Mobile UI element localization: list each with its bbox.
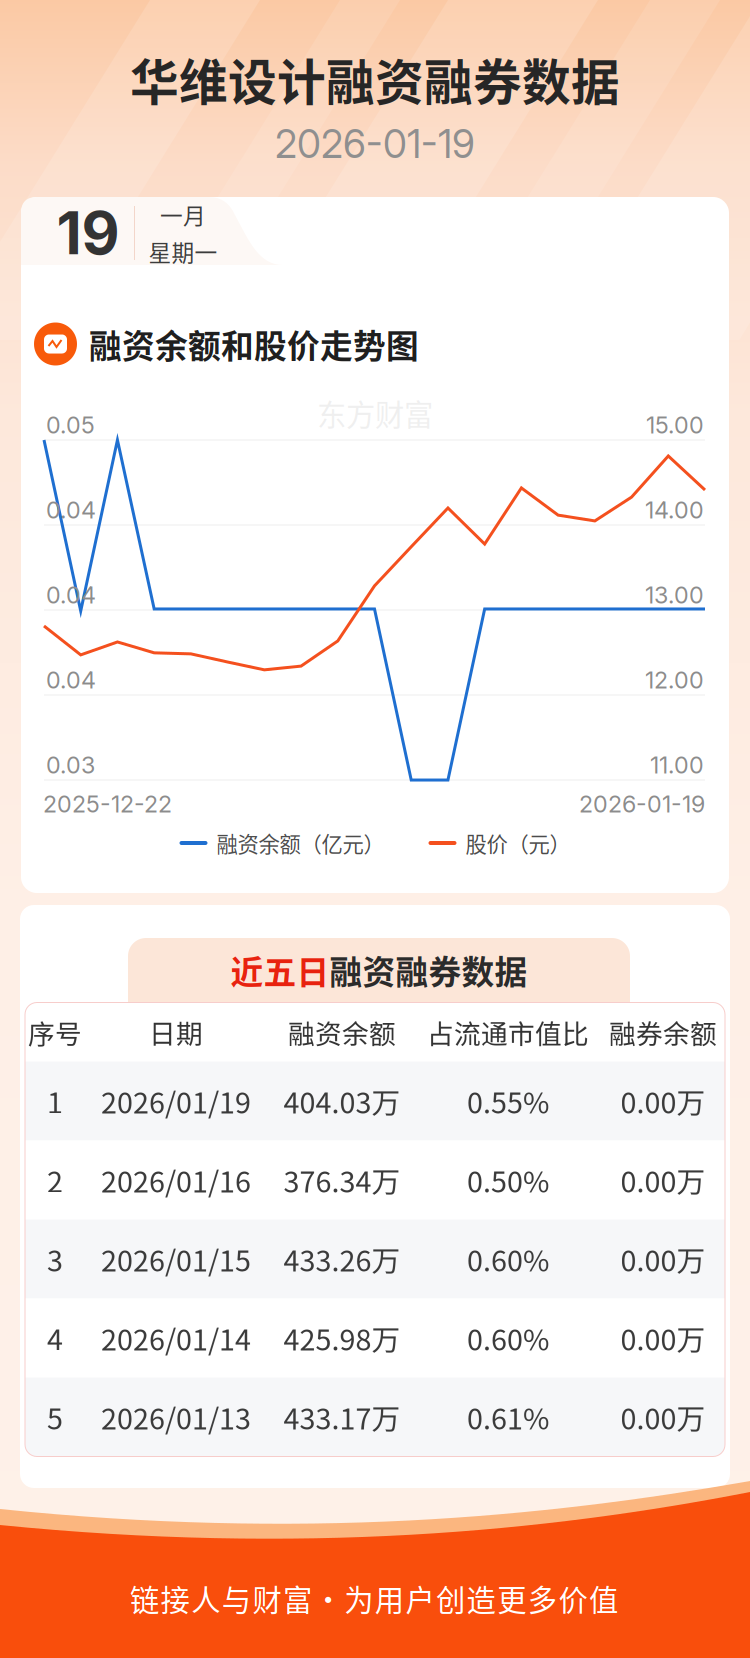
staticText: 近五日 xyxy=(230,946,329,994)
staticText: 融券余额 xyxy=(609,1013,717,1051)
staticText: 433.17万 xyxy=(283,1396,400,1438)
staticText: 融资余额和股价走势图 xyxy=(89,320,419,368)
staticText: 404.03万 xyxy=(283,1080,400,1122)
staticText: 3 xyxy=(47,1238,63,1280)
staticText: 0.00万 xyxy=(620,1317,705,1359)
staticText: 序号 xyxy=(28,1013,82,1051)
staticText: 0.04 xyxy=(46,496,96,524)
staticText: 0.60% xyxy=(467,1317,549,1359)
staticText: 0.61% xyxy=(467,1396,549,1438)
staticText: 0.05 xyxy=(46,411,95,439)
staticText: 2025-12-22 xyxy=(43,790,172,818)
staticText: 0.55% xyxy=(467,1080,549,1122)
staticText: 11.00 xyxy=(650,751,704,779)
staticText: 0.60% xyxy=(467,1238,549,1280)
staticText: 0.04 xyxy=(46,581,96,609)
staticText: 2026/01/16 xyxy=(101,1159,251,1201)
staticText: 19 xyxy=(56,197,119,268)
staticText: 425.98万 xyxy=(283,1317,400,1359)
staticText: 一月 xyxy=(160,198,206,231)
staticText: 0.00万 xyxy=(620,1159,705,1201)
staticText: 2026-01-19 xyxy=(275,121,475,167)
staticText: 2026/01/19 xyxy=(101,1080,251,1122)
staticText: 0.04 xyxy=(46,666,96,694)
staticText: 占流通市值比 xyxy=(427,1013,589,1051)
staticText: 12.00 xyxy=(645,666,704,694)
staticText: 0.03 xyxy=(46,751,95,779)
staticText: 融资余额（亿元） xyxy=(216,828,384,858)
staticText: 星期一 xyxy=(148,235,217,268)
staticText: 0.00万 xyxy=(620,1080,705,1122)
staticText: 15.00 xyxy=(646,411,704,439)
staticText: 2026/01/15 xyxy=(101,1238,251,1280)
staticText: 东方财富 xyxy=(317,392,433,434)
staticText: 2026/01/14 xyxy=(101,1317,251,1359)
staticText: 13.00 xyxy=(645,581,704,609)
staticText: 0.00万 xyxy=(620,1396,705,1438)
staticText: 链接人与财富·为用户创造更多价值 xyxy=(130,1577,618,1619)
staticText: 0.50% xyxy=(467,1159,549,1201)
staticText: 1 xyxy=(47,1080,63,1122)
staticText: 5 xyxy=(47,1396,63,1438)
staticText: 股价（元） xyxy=(465,828,570,858)
staticText: 14.00 xyxy=(645,496,704,524)
staticText: 融资余额 xyxy=(288,1013,396,1051)
staticText: 2 xyxy=(47,1159,63,1201)
staticText: 4 xyxy=(47,1317,63,1359)
staticText: 376.34万 xyxy=(283,1159,400,1201)
staticText: 0.00万 xyxy=(620,1238,705,1280)
staticText: 433.26万 xyxy=(283,1238,400,1280)
staticText: 2026/01/13 xyxy=(101,1396,251,1438)
staticText: 2026-01-19 xyxy=(579,790,705,818)
staticText: 日期 xyxy=(149,1013,203,1051)
staticText: 华维设计融资融券数据 xyxy=(130,44,620,114)
staticText: 融资融券数据 xyxy=(329,946,527,994)
